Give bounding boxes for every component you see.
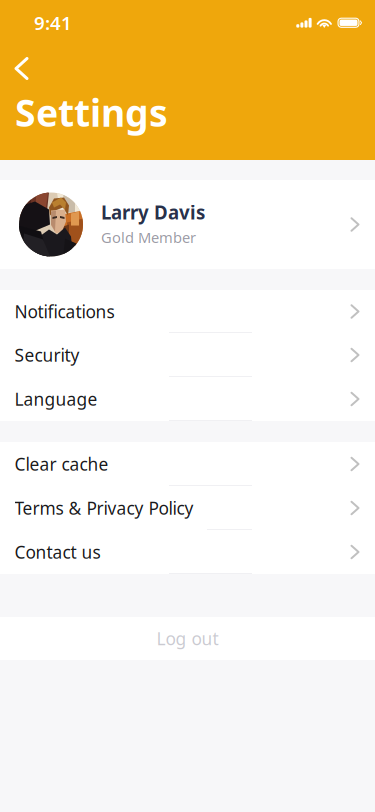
staticText: Gold Member (101, 228, 196, 247)
staticText: Language (14, 387, 97, 410)
staticText: Settings (15, 87, 168, 137)
button[interactable]: Larry Davis (0, 180, 375, 269)
staticText: 9:41 (34, 10, 72, 35)
button[interactable]: Log out (0, 617, 375, 660)
button[interactable]: Clear cache (0, 442, 375, 486)
staticText: Log out (156, 627, 218, 650)
staticText: Security (14, 343, 79, 366)
staticText: Terms & Privacy Policy (14, 496, 193, 519)
button[interactable]: Security (0, 333, 375, 377)
button[interactable]: Back (0, 45, 43, 84)
button[interactable]: Contact us (0, 530, 375, 574)
staticText: Notifications (14, 300, 114, 323)
staticText: Contact us (14, 540, 100, 563)
button[interactable]: Notifications (0, 290, 375, 333)
staticText: Larry Davis (101, 200, 205, 225)
button[interactable]: Terms & Privacy Policy (0, 486, 375, 530)
button[interactable]: Language (0, 377, 375, 421)
staticText: Clear cache (14, 452, 108, 475)
